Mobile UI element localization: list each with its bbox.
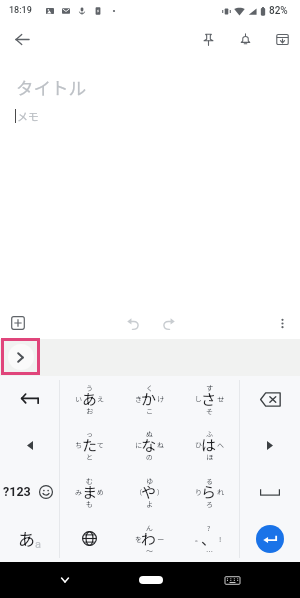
staticText: か [141,388,157,410]
button[interactable]: More options [269,310,295,336]
staticText: り [195,487,202,497]
staticText: と [86,452,93,462]
button[interactable]: Change input mode [0,515,59,562]
button[interactable]: Back [7,24,37,54]
staticText: れ [217,487,224,497]
staticText: ひ [195,440,202,450]
staticText: ね [157,440,164,450]
button[interactable]: Punctuation [179,515,239,562]
staticText: に [135,440,142,450]
staticText: ゆ [146,476,153,486]
button[interactable]: Reminder [230,24,260,54]
staticText: こ [146,406,153,416]
staticText: す [206,383,213,393]
button[interactable]: Move cursor right [240,422,300,468]
button[interactable]: Home [139,576,163,584]
staticText: 18:19 [9,5,32,16]
staticText: も [86,499,93,509]
staticText: お [86,406,93,416]
staticText: ?123 [3,484,31,499]
staticText: っ [86,429,93,439]
button[interactable]: わ [119,515,179,562]
staticText: る [206,476,213,486]
staticText: の [146,452,153,462]
staticText: は [201,434,217,456]
button[interactable]: や [119,468,179,515]
button[interactable]: Change language [60,515,119,562]
staticText: う [86,383,93,393]
staticText: よ [146,499,153,509]
staticText: え [97,394,104,404]
button[interactable]: Backspace word [0,376,59,422]
button[interactable]: ら [179,468,239,515]
button[interactable]: な [119,422,179,468]
staticText: く [146,383,153,393]
staticText: 。 [195,534,202,544]
staticText: a [35,538,41,551]
button[interactable]: Undo [120,310,146,336]
button[interactable]: は [179,422,239,468]
staticText: ま [82,481,98,503]
button[interactable]: ま [60,468,119,515]
button[interactable]: Enter [256,525,284,553]
staticText: ち [75,440,82,450]
button[interactable]: Move cursor left [0,422,59,468]
button[interactable]: Hide keyboard [53,568,77,592]
staticText: た [82,434,98,456]
button[interactable]: Archive [267,24,297,54]
button[interactable]: あ [60,376,119,422]
staticText: へ [217,440,224,450]
staticText: ー [157,534,164,544]
staticText: ん [146,523,153,533]
staticText: （ [135,487,142,497]
staticText: ろ [206,499,213,509]
button[interactable]: Symbols [0,468,33,515]
staticText: む [86,476,93,486]
staticText: … [206,546,213,556]
staticText: タイトル [16,75,86,100]
staticText: み [75,487,82,497]
staticText: や [141,481,157,503]
staticText: ほ [206,452,213,462]
button[interactable]: Pin note [193,24,223,54]
button[interactable]: Redo [155,310,181,336]
staticText: し [195,394,202,404]
button[interactable]: Expand suggestions [1,338,40,375]
staticText: ふ [206,429,213,439]
staticText: わ [141,528,157,550]
button[interactable]: か [119,376,179,422]
staticText: め [97,487,104,497]
staticText: な [141,434,157,456]
staticText: き [135,394,142,404]
staticText: さ [201,388,217,410]
button[interactable]: さ [179,376,239,422]
staticText: ? [207,523,211,533]
staticText: ! [219,534,222,544]
staticText: け [157,394,164,404]
staticText: そ [206,406,213,416]
button[interactable]: Switch keyboard [220,568,244,592]
button[interactable]: Delete [240,376,300,422]
button[interactable]: た [60,422,119,468]
staticText: あ [18,526,35,551]
staticText: メモ [17,108,39,124]
button[interactable]: Add [5,310,31,336]
staticText: い [75,394,82,404]
button[interactable]: Emoji [33,468,59,515]
staticText: 〜 [146,546,153,556]
staticText: 82% [269,5,288,17]
staticText: ら [201,481,217,503]
staticText: せ [217,394,224,404]
button[interactable]: Space [240,468,300,515]
staticText: ） [157,487,164,497]
staticText: あ [82,388,98,410]
staticText: 、 [201,528,217,550]
staticText: て [97,440,104,450]
staticText: ぬ [146,429,153,439]
staticText: を [135,534,142,544]
